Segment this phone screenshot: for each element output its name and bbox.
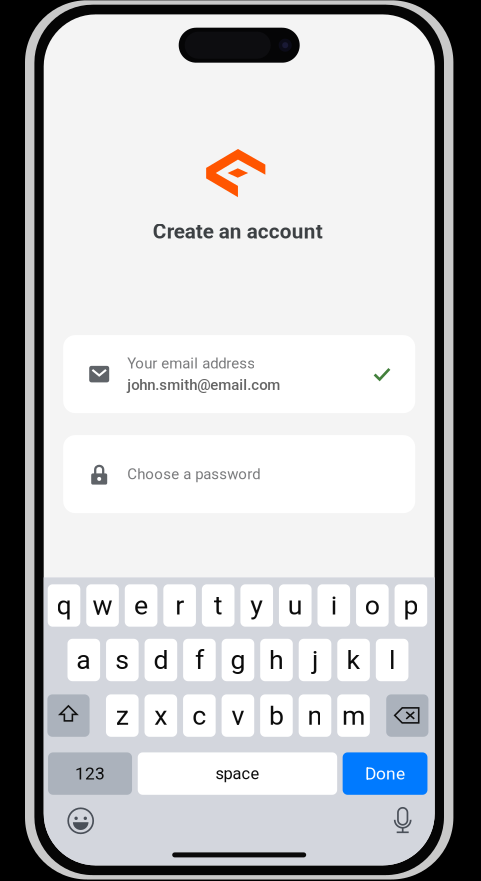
staticText: j	[312, 644, 318, 676]
staticText: l	[389, 644, 395, 676]
staticText: n	[307, 700, 322, 731]
button[interactable]: x	[144, 694, 177, 737]
staticText: g	[230, 644, 245, 676]
button[interactable]: k	[337, 639, 370, 681]
button[interactable]: b	[260, 694, 293, 737]
button[interactable]: Dictation	[389, 806, 417, 836]
button[interactable]: t	[202, 584, 234, 627]
button[interactable]: s	[106, 639, 139, 681]
button[interactable]: d	[145, 639, 177, 681]
button[interactable]: Delete	[386, 694, 428, 737]
staticText: b	[269, 700, 284, 731]
staticText: p	[403, 590, 418, 621]
staticText: 123	[75, 763, 105, 784]
staticText: u	[288, 590, 303, 621]
staticText: k	[347, 644, 361, 676]
staticText: z	[116, 700, 129, 731]
staticText: space	[215, 764, 259, 783]
staticText: h	[269, 644, 284, 676]
staticText: q	[56, 590, 71, 621]
button[interactable]: i	[317, 584, 350, 627]
staticText: john.smith@email.com	[127, 376, 280, 394]
button[interactable]: Emoji	[66, 806, 96, 836]
button[interactable]: y	[240, 584, 273, 627]
button[interactable]: r	[163, 584, 196, 627]
button[interactable]: n	[299, 694, 331, 737]
staticText: c	[192, 700, 206, 731]
staticText: e	[134, 590, 148, 621]
staticText: Create an account	[153, 219, 323, 244]
button[interactable]: Done	[343, 752, 427, 795]
button[interactable]: a	[67, 639, 100, 681]
button[interactable]: p	[395, 584, 427, 627]
button[interactable]: g	[222, 639, 254, 681]
staticText: t	[214, 590, 223, 621]
staticText: Choose a password	[127, 465, 260, 483]
button[interactable]: Your email address	[63, 335, 415, 413]
staticText: x	[154, 700, 167, 731]
button[interactable]: j	[299, 639, 331, 681]
staticText: o	[365, 590, 380, 621]
button[interactable]: 123	[48, 752, 132, 795]
button[interactable]: l	[376, 639, 408, 681]
button[interactable]: v	[222, 694, 254, 737]
staticText: m	[342, 700, 365, 731]
button[interactable]: f	[183, 639, 216, 681]
staticText: d	[153, 644, 168, 676]
button[interactable]: q	[48, 584, 80, 627]
button[interactable]: o	[356, 584, 389, 627]
staticText: Done	[365, 763, 405, 784]
staticText: a	[76, 644, 91, 676]
staticText: y	[250, 590, 263, 621]
staticText: Your email address	[127, 355, 255, 372]
button[interactable]: m	[337, 694, 370, 737]
button[interactable]: space	[138, 752, 337, 795]
button[interactable]: Shift	[47, 694, 90, 737]
staticText: w	[93, 590, 113, 621]
staticText: r	[175, 590, 184, 621]
button[interactable]: w	[86, 584, 119, 627]
staticText: s	[115, 644, 129, 676]
button[interactable]: z	[106, 694, 139, 737]
button[interactable]: u	[279, 584, 312, 627]
button[interactable]: Choose a password	[63, 435, 415, 513]
button[interactable]: h	[260, 639, 293, 681]
button[interactable]: c	[183, 694, 216, 737]
button[interactable]: e	[125, 584, 157, 627]
staticText: f	[195, 644, 204, 676]
staticText: i	[331, 590, 337, 621]
staticText: v	[231, 700, 244, 731]
